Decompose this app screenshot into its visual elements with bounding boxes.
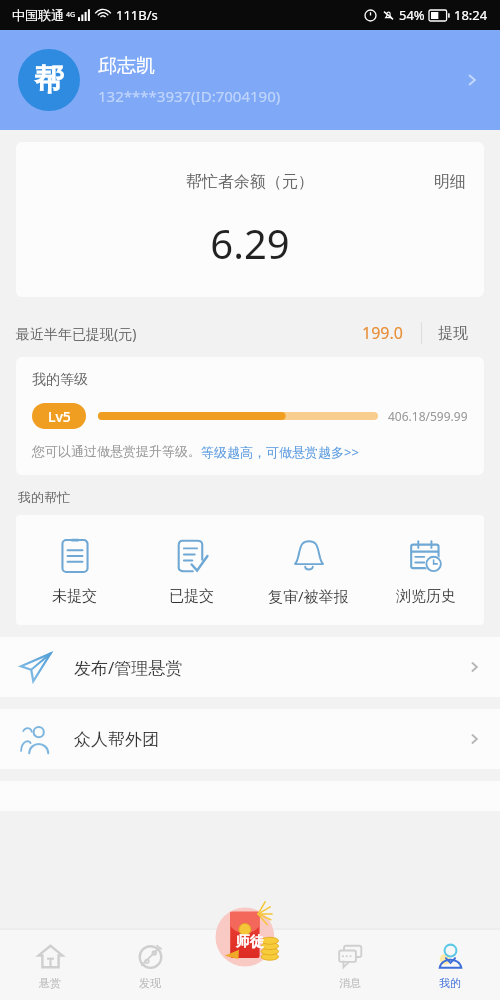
staticText: 132****3937(ID:7004190) xyxy=(98,86,281,106)
staticText: 已提交 xyxy=(169,587,214,606)
staticText: 明细 xyxy=(434,172,466,192)
staticText: 111B/s xyxy=(116,6,158,24)
button[interactable]: 复审/被举报 xyxy=(250,515,367,625)
button[interactable]: 我的 xyxy=(400,930,500,1000)
staticText: 帮 xyxy=(34,61,64,99)
button[interactable]: 已提交 xyxy=(133,515,250,625)
staticText: 师徒 xyxy=(236,933,264,951)
button[interactable]: 发现 xyxy=(100,930,200,1000)
button[interactable]: 发布/管理悬赏 xyxy=(0,637,500,697)
staticText: 中国联通 xyxy=(12,7,64,23)
staticText: 悬赏 xyxy=(39,976,61,990)
button[interactable]: 浏览历史 xyxy=(367,515,484,625)
staticText: Lv5 xyxy=(48,407,71,426)
staticText: 406.18/599.99 xyxy=(388,408,468,424)
staticText: 6.29 xyxy=(16,216,484,270)
staticText: 提现 xyxy=(438,324,468,343)
staticText: 最近半年已提现(元) xyxy=(16,324,137,343)
button[interactable]: 等级越高，可做悬赏越多>> xyxy=(201,443,359,461)
staticText: 我的等级 xyxy=(32,371,88,389)
staticText: 邱志凯 xyxy=(98,54,155,78)
staticText: 消息 xyxy=(339,976,361,990)
staticText: 我的 xyxy=(439,976,461,990)
staticText: 您可以通过做悬赏提升等级。 xyxy=(32,443,201,459)
staticText: 众人帮外团 xyxy=(74,729,159,750)
button[interactable]: 明细 xyxy=(416,168,484,196)
staticText: 未提交 xyxy=(52,587,97,606)
button[interactable]: 未提交 xyxy=(16,515,133,625)
staticText: 发现 xyxy=(139,976,161,990)
staticText: 帮忙者余额（元） xyxy=(186,172,314,192)
button[interactable]: 悬赏 xyxy=(0,930,100,1000)
staticText: 4G xyxy=(66,10,76,20)
button[interactable]: 消息 xyxy=(300,930,400,1000)
button[interactable]: 提现 xyxy=(422,318,484,349)
staticText: 复审/被举报 xyxy=(268,586,349,606)
button[interactable]: 师徒 xyxy=(212,902,288,972)
button[interactable]: 帮 xyxy=(0,30,500,130)
staticText: 浏览历史 xyxy=(396,587,456,606)
button[interactable]: 众人帮外团 xyxy=(0,709,500,769)
staticText: 18:24 xyxy=(454,6,488,24)
staticText: 我的帮忙 xyxy=(18,489,70,505)
other: Profile details xyxy=(462,70,482,90)
staticText: 199.0 xyxy=(362,322,403,344)
staticText: 等级越高，可做悬赏越多>> xyxy=(201,443,359,461)
staticText: 发布/管理悬赏 xyxy=(74,656,183,679)
staticText: 54% xyxy=(399,6,425,24)
